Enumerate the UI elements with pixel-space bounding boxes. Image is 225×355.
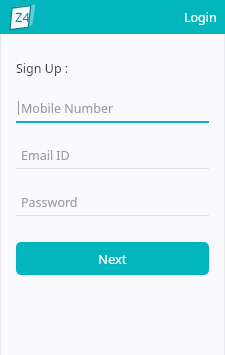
button[interactable]: Mobile Number (16, 98, 209, 123)
staticText: Login (184, 9, 217, 26)
button[interactable]: Next (16, 242, 209, 275)
staticText: Email ID (21, 147, 70, 164)
staticText: Sign Up : (16, 60, 69, 77)
staticText: Mobile Number (21, 100, 114, 117)
button[interactable]: Login (176, 3, 225, 32)
staticText: Z4 (15, 8, 30, 26)
button[interactable]: Password (16, 192, 209, 216)
staticText: Password (21, 194, 78, 211)
button[interactable]: Z4 home (10, 4, 36, 30)
staticText: Next (98, 250, 127, 268)
button[interactable]: Email ID (16, 145, 209, 169)
